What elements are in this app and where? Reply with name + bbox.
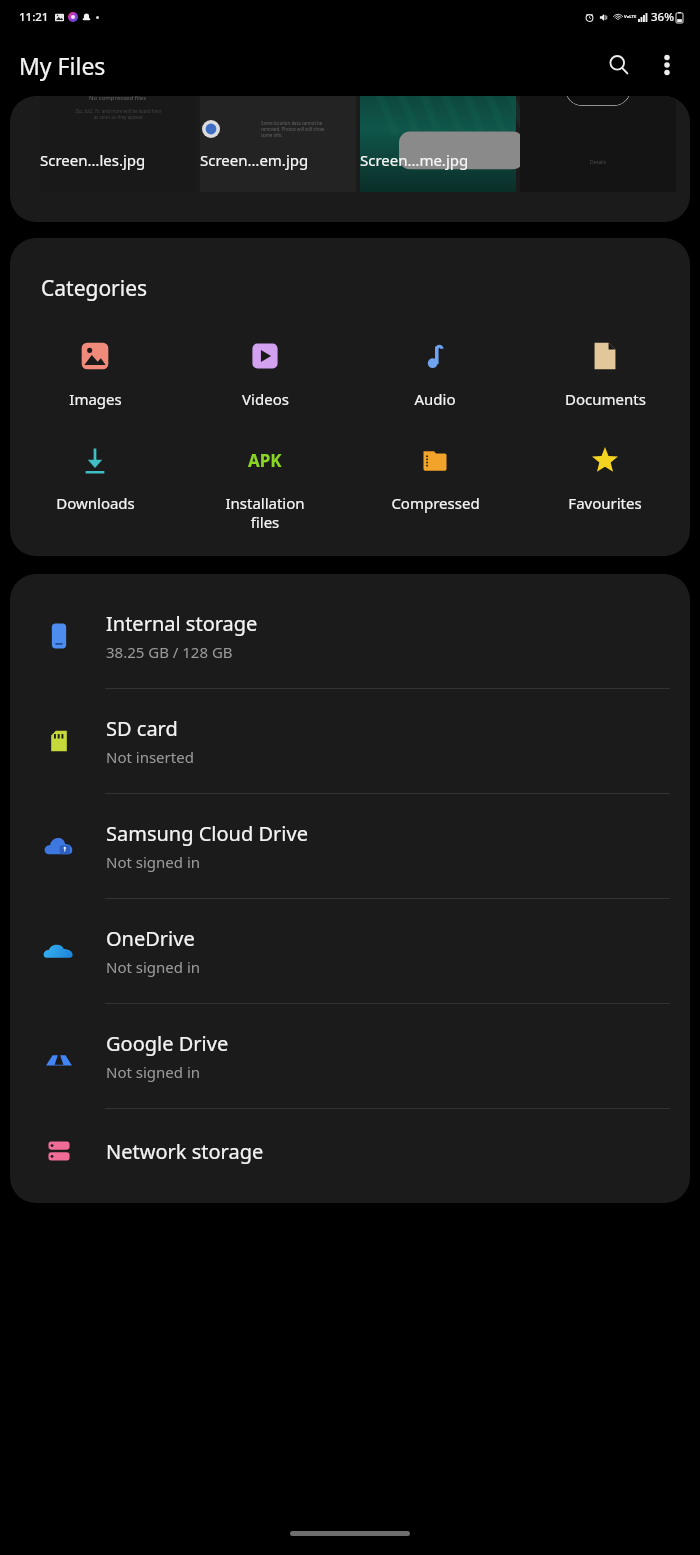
staticText: Internal storage	[106, 610, 258, 637]
button[interactable]: Samsung Cloud Drive	[10, 794, 690, 898]
button[interactable]: Videos	[180, 333, 350, 411]
staticText: APK	[248, 449, 282, 472]
staticText: Samsung Cloud Drive	[106, 820, 308, 847]
button[interactable]: Network storage	[10, 1109, 690, 1193]
staticText: Details	[590, 159, 607, 166]
staticText: Categories	[41, 274, 148, 303]
staticText: SD card	[106, 715, 178, 742]
button[interactable]: OneDrive	[10, 899, 690, 1003]
staticText: Screen…les.jpg	[40, 150, 146, 170]
staticText: Images	[69, 389, 122, 409]
staticText: Not signed in	[106, 1062, 201, 1082]
button[interactable]: APK	[180, 437, 350, 534]
staticText: VoLTE	[624, 14, 637, 20]
staticText: Not signed in	[106, 957, 201, 977]
staticText: Some location data cannot be removed. Ph…	[261, 120, 325, 138]
button[interactable]: Documents	[520, 333, 690, 411]
staticText: Documents	[565, 389, 646, 409]
button[interactable]: Favourites	[520, 437, 690, 515]
staticText: Downloads	[56, 493, 135, 513]
staticText: Audio	[414, 389, 456, 409]
button[interactable]: No compressed files	[10, 96, 690, 222]
staticText: 36%	[651, 9, 674, 25]
button[interactable]: Images	[10, 333, 180, 411]
staticText: Screen…em.jpg	[200, 150, 309, 170]
staticText: Videos	[242, 389, 289, 409]
staticText: Compressed	[391, 493, 480, 513]
staticText: My Files	[19, 50, 106, 81]
button[interactable]: Compressed	[350, 437, 520, 515]
staticText: 38.25 GB / 128 GB	[106, 642, 233, 662]
staticText: Screen…me.jpg	[360, 150, 469, 170]
button[interactable]: Internal storage	[10, 584, 690, 688]
staticText: OneDrive	[106, 925, 195, 952]
staticText: Installation files	[225, 493, 305, 532]
button[interactable]: Search	[595, 41, 643, 89]
button[interactable]: Audio	[350, 333, 520, 411]
staticText: Favourites	[568, 493, 642, 513]
button[interactable]: Downloads	[10, 437, 180, 515]
staticText: Network storage	[106, 1138, 264, 1165]
button[interactable]: SD card	[10, 689, 690, 793]
staticText: Zip, bz2, 7z, and more will be listed he…	[75, 108, 162, 120]
staticText: Not inserted	[106, 747, 194, 767]
button[interactable]: More options	[643, 41, 691, 89]
staticText: 11:21	[19, 9, 49, 25]
staticText: Not signed in	[106, 852, 201, 872]
button[interactable]: Google Drive	[10, 1004, 690, 1108]
staticText: No compressed files	[89, 96, 147, 102]
staticText: Google Drive	[106, 1030, 229, 1057]
